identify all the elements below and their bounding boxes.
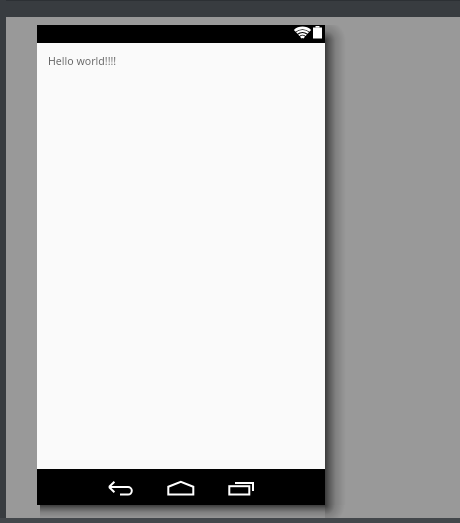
button[interactable]	[226, 479, 258, 505]
button[interactable]	[103, 474, 139, 500]
staticText: Hello world!!!!	[48, 54, 117, 68]
button[interactable]	[166, 479, 196, 505]
